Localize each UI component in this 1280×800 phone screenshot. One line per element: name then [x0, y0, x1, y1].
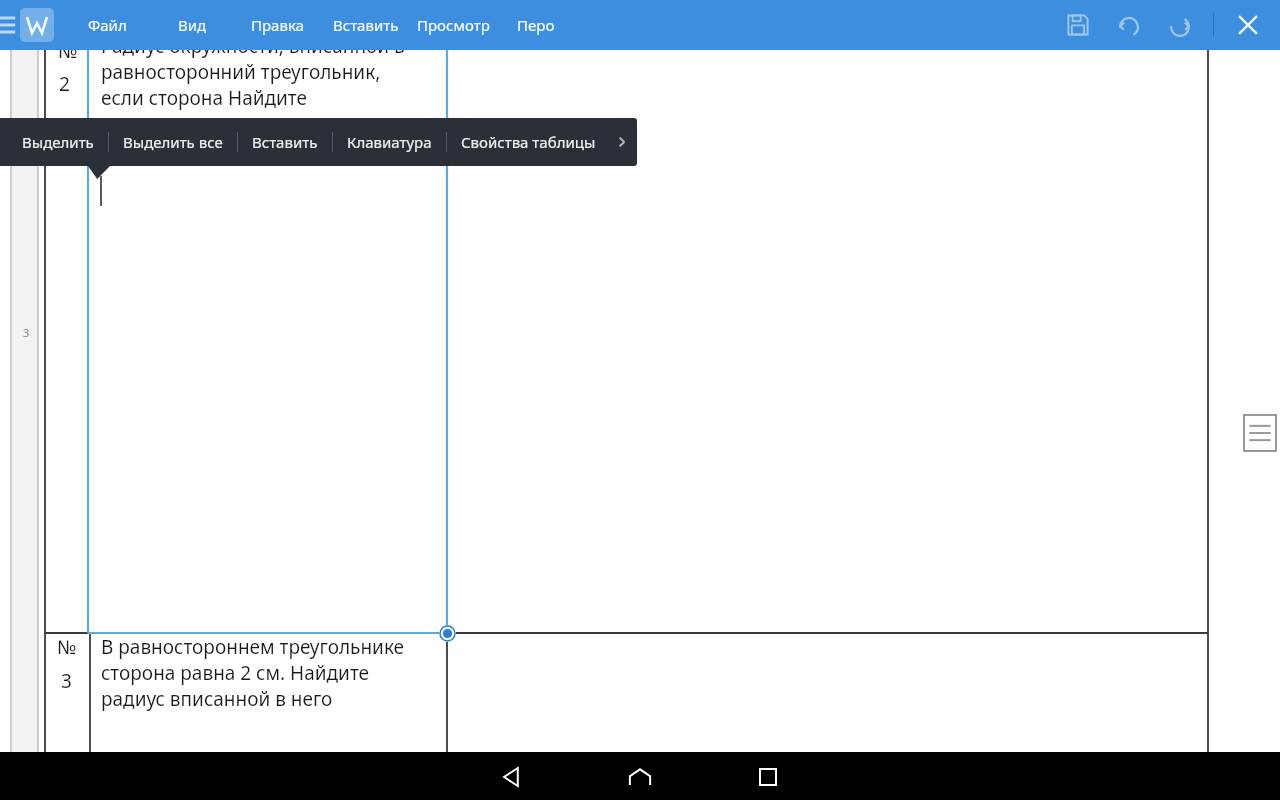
- button[interactable]: Redo: [1164, 9, 1196, 41]
- button[interactable]: Close: [1232, 9, 1264, 41]
- staticText: Правка: [251, 15, 304, 35]
- button[interactable]: Клавиатура: [333, 118, 446, 166]
- staticText: №: [58, 38, 78, 64]
- button[interactable]: Выделить: [8, 118, 108, 166]
- staticText: радиус вписанной в него: [101, 686, 333, 712]
- staticText: сторона равна 2 см. Найдите: [101, 660, 370, 686]
- staticText: Просмотр: [417, 15, 490, 35]
- button[interactable]: Save: [1062, 9, 1094, 41]
- staticText: равносторонний треугольник,: [101, 59, 381, 85]
- staticText: Свойства таблицы: [461, 132, 596, 152]
- button[interactable]: Файл: [78, 8, 137, 42]
- staticText: 3: [61, 668, 72, 694]
- staticText: 3: [23, 325, 30, 340]
- staticText: Перо: [517, 15, 555, 35]
- button[interactable]: Page outline: [1241, 412, 1279, 454]
- button[interactable]: Вставить: [238, 118, 332, 166]
- button[interactable]: Выделить все: [109, 118, 237, 166]
- button[interactable]: Перо: [507, 8, 565, 42]
- staticText: Клавиатура: [347, 132, 432, 152]
- staticText: если сторона Найдите: [101, 85, 307, 111]
- staticText: №: [57, 634, 77, 660]
- button[interactable]: Правка: [241, 8, 314, 42]
- staticText: 2: [59, 71, 70, 97]
- button[interactable]: Selection handle: [439, 625, 456, 642]
- staticText: ONLINE: [1202, 748, 1262, 770]
- staticText: Выделить: [22, 132, 94, 152]
- staticText: Вид: [178, 15, 207, 35]
- staticText: Вставить: [333, 15, 399, 35]
- button[interactable]: Свойства таблицы: [447, 118, 610, 166]
- button[interactable]: Вставить: [323, 8, 409, 42]
- button[interactable]: Просмотр: [407, 8, 500, 42]
- button[interactable]: Recent apps: [748, 764, 788, 790]
- button[interactable]: Home: [620, 764, 660, 790]
- staticText: Файл: [88, 15, 127, 35]
- staticText: Радиус окружности, вписанной в: [101, 33, 405, 59]
- staticText: треугольника.: [101, 111, 231, 137]
- button[interactable]: More options: [610, 118, 634, 166]
- button[interactable]: Вид: [168, 8, 217, 42]
- button[interactable]: Undo: [1113, 9, 1145, 41]
- staticText: Вставить: [252, 132, 318, 152]
- staticText: Выделить все: [123, 132, 223, 152]
- button[interactable]: Back: [492, 764, 532, 790]
- staticText: В равностороннем треугольнике: [101, 634, 405, 660]
- button[interactable]: WPS Writer: [20, 8, 54, 42]
- button[interactable]: Menu: [0, 11, 16, 39]
